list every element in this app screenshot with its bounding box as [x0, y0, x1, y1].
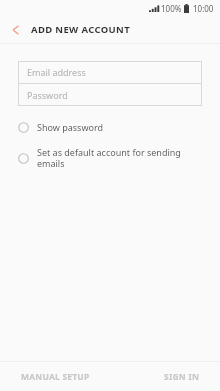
button[interactable]: Back	[0, 16, 31, 43]
staticText: Show password	[37, 121, 103, 133]
staticText: Email address	[27, 66, 86, 78]
staticText: Password	[27, 89, 68, 101]
button[interactable]: Set as default account for sending email…	[0, 143, 220, 173]
button[interactable]: Email address	[18, 61, 202, 83]
staticText: 10:00	[193, 3, 214, 14]
button[interactable]: Show password	[0, 118, 220, 136]
button[interactable]: Password	[18, 84, 202, 106]
staticText: 100%	[161, 3, 182, 14]
button[interactable]: SIGN IN	[110, 362, 220, 391]
staticText: Set as default account for sending email…	[37, 146, 196, 170]
staticText: MANUAL SETUP	[21, 371, 90, 383]
button[interactable]: MANUAL SETUP	[0, 362, 110, 391]
staticText: SIGN IN	[164, 371, 199, 383]
staticText: ADD NEW ACCOUNT	[31, 23, 131, 36]
